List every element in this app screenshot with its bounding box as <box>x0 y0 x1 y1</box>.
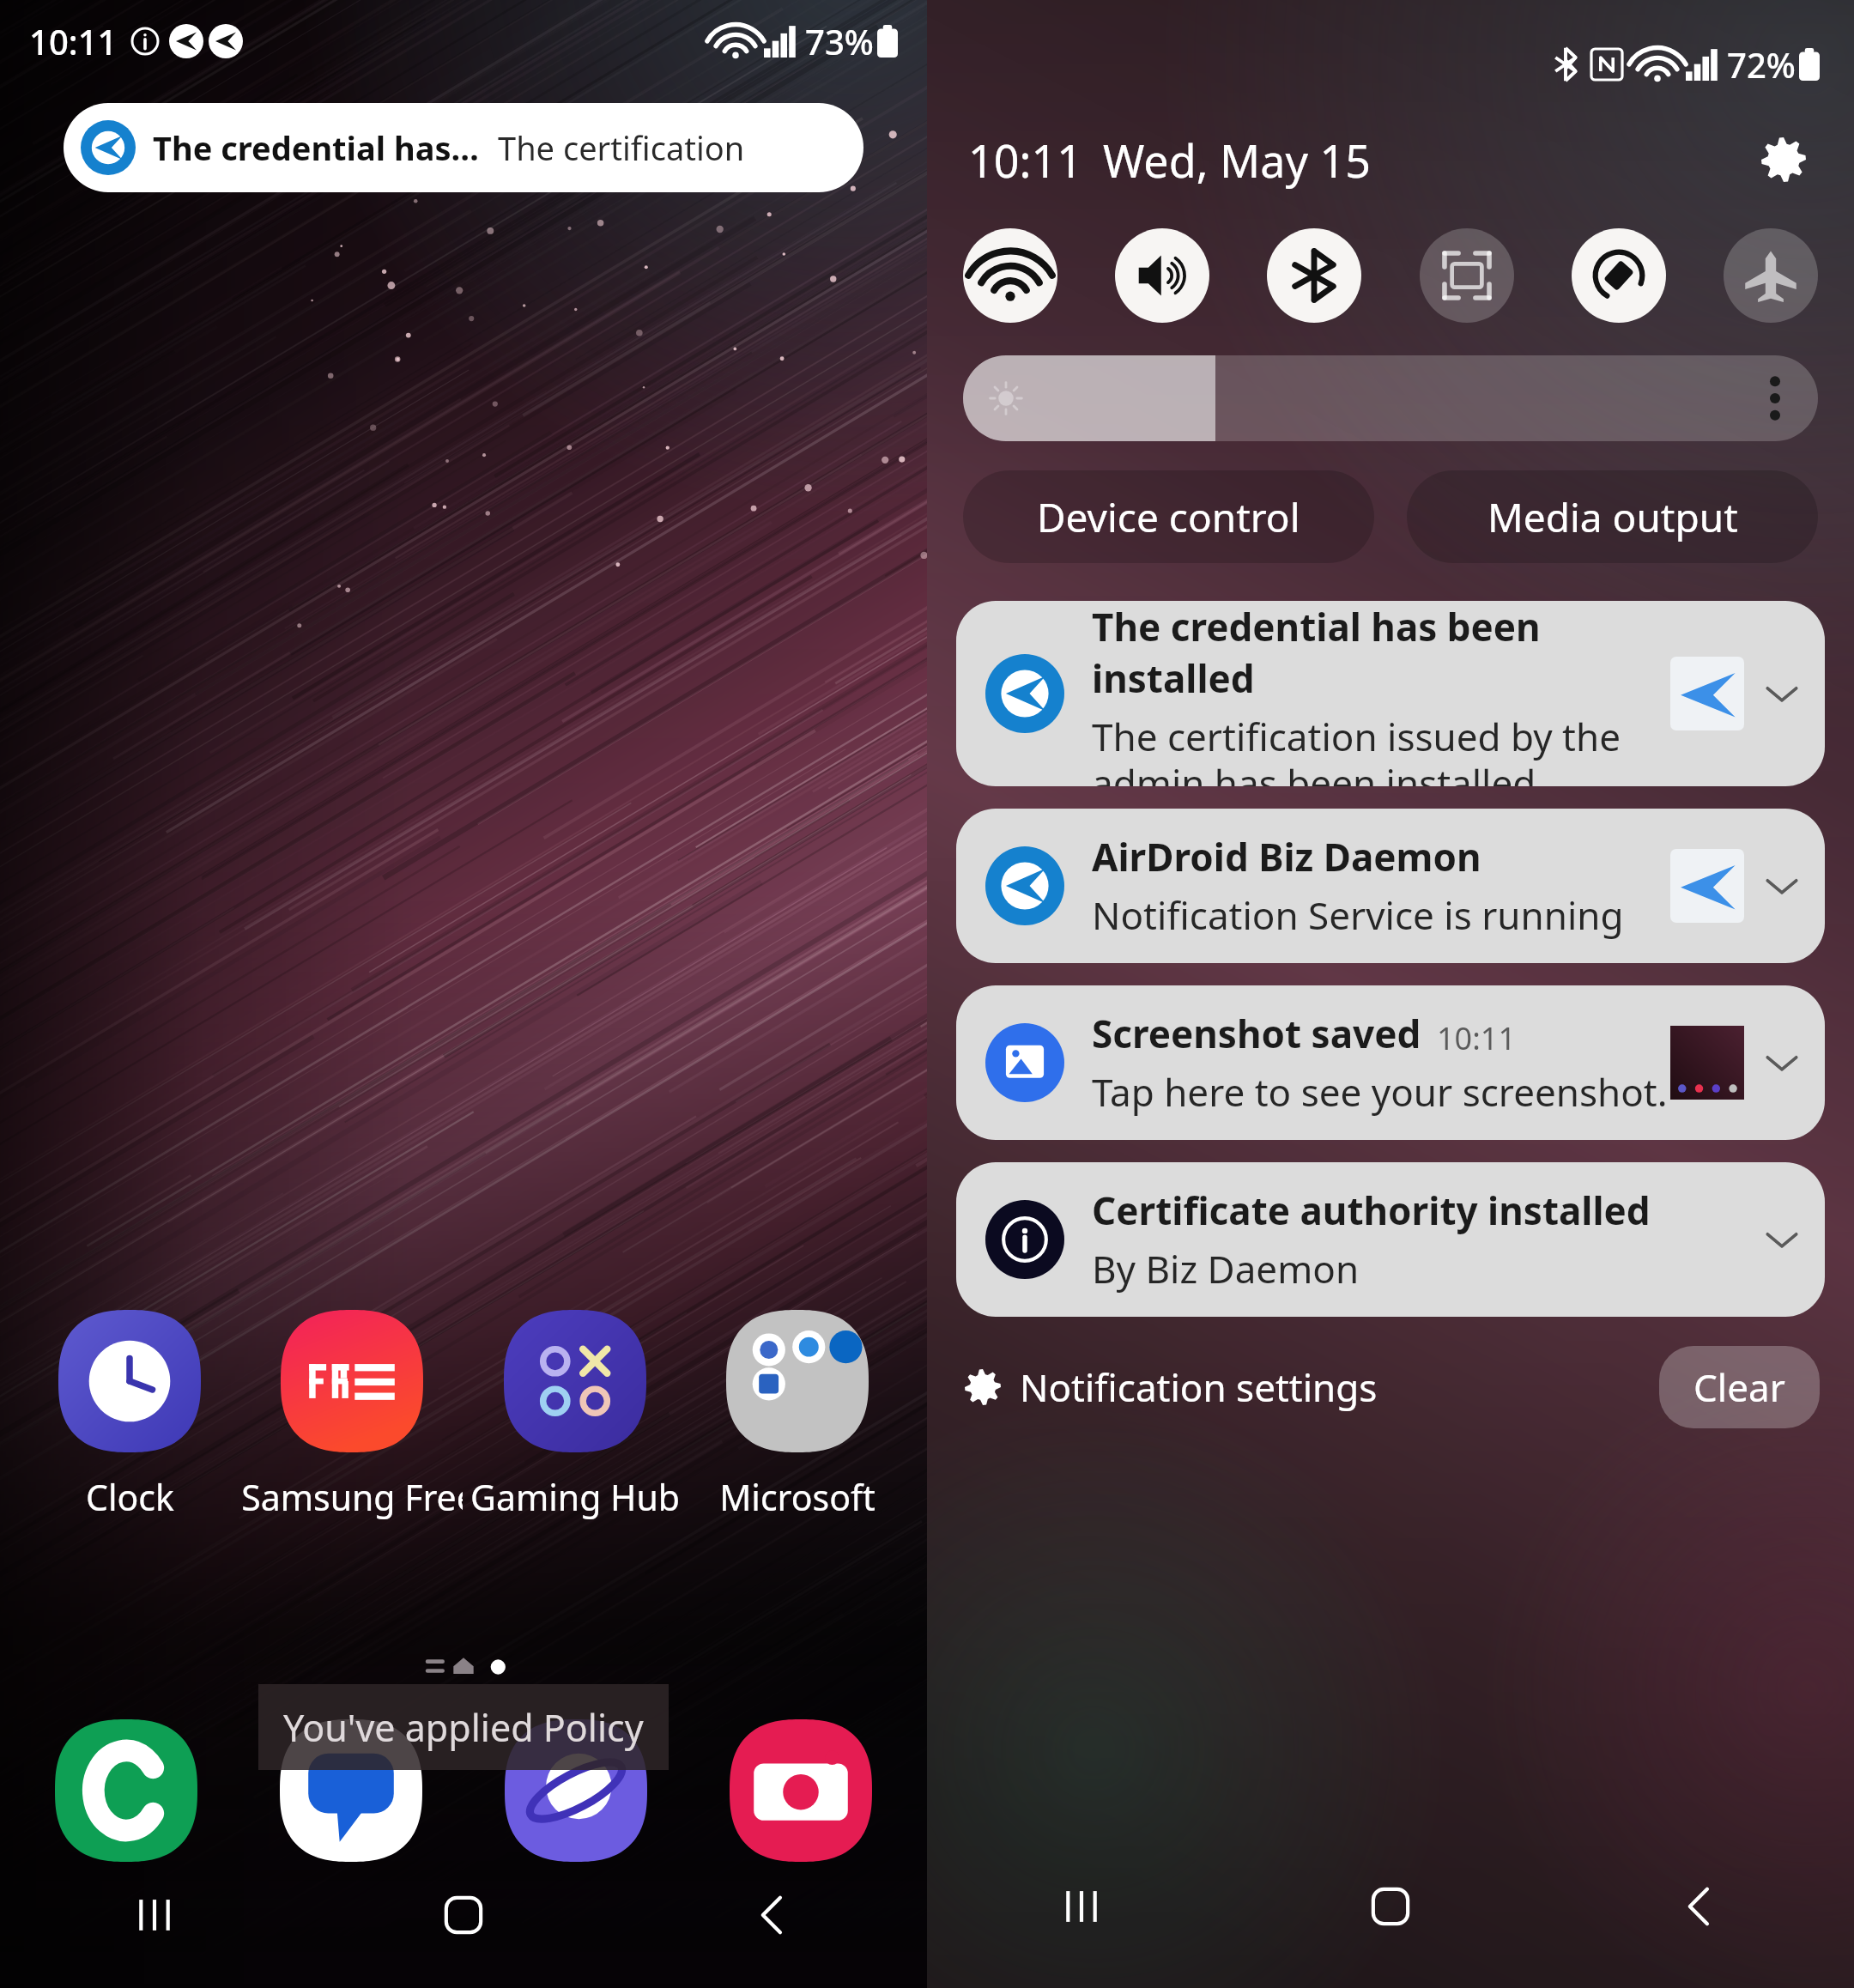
button[interactable]: Samsung Free <box>241 1310 463 1521</box>
button[interactable]: Device control <box>963 470 1374 563</box>
staticText: Clock <box>86 1473 174 1521</box>
staticText: Screenshot saved <box>1092 1008 1421 1059</box>
staticText: Gaming Hub <box>470 1473 680 1521</box>
button[interactable]: Back <box>1545 1859 1854 1954</box>
button[interactable]: Toggle <box>1115 228 1209 323</box>
button[interactable]: Toggle <box>1420 228 1514 323</box>
staticText: The certification issued by the admin ha… <box>1092 711 1621 786</box>
button[interactable]: The credential has… <box>64 103 863 192</box>
button[interactable]: Home <box>309 1868 618 1962</box>
button[interactable]: Toggle <box>1724 228 1818 323</box>
staticText: The certification issued… <box>498 125 846 170</box>
button[interactable]: Clock <box>19 1310 240 1521</box>
button[interactable]: Recents <box>0 1868 309 1962</box>
button[interactable]: Toggle <box>963 228 1057 323</box>
staticText: Tap here to see your screenshot. <box>1092 1066 1668 1118</box>
staticText: 10:11 <box>1437 1017 1517 1059</box>
staticText: 10:11 <box>29 18 118 64</box>
staticText: 72% <box>1727 41 1796 88</box>
staticText: Device control <box>1037 490 1300 544</box>
staticText: 10:11 <box>968 130 1082 191</box>
button[interactable]: App <box>19 1713 233 1868</box>
staticText: The credential has been installed <box>1092 601 1670 704</box>
button[interactable]: Home <box>1236 1859 1545 1954</box>
button[interactable]: App <box>469 1713 683 1868</box>
staticText: The credential has… <box>153 125 479 170</box>
staticText: Microsoft <box>719 1473 875 1521</box>
button[interactable]: Screenshot saved <box>956 985 1825 1140</box>
staticText: Certificate authority installed <box>1092 1185 1651 1236</box>
staticText: Media output <box>1487 490 1738 544</box>
button[interactable]: Gaming Hub <box>464 1310 686 1521</box>
button[interactable]: Toggle <box>1572 228 1666 323</box>
staticText: Samsung Free <box>241 1473 463 1521</box>
button[interactable]: Brightness <box>963 355 1818 441</box>
button[interactable]: Microsoft <box>687 1310 908 1521</box>
button[interactable]: AirDroid Biz Daemon <box>956 809 1825 963</box>
staticText: Clear <box>1693 1361 1785 1413</box>
button[interactable]: Recents <box>927 1859 1236 1954</box>
button[interactable]: Clear <box>1659 1346 1820 1428</box>
staticText: Wed, May 15 <box>1103 130 1371 191</box>
button[interactable]: App <box>244 1713 458 1868</box>
button[interactable]: App <box>694 1713 908 1868</box>
button[interactable]: Media output <box>1407 470 1818 563</box>
staticText: By Biz Daemon <box>1092 1243 1360 1294</box>
button[interactable]: The credential has been installed <box>956 601 1825 786</box>
button[interactable]: Back <box>618 1868 927 1962</box>
staticText: AirDroid Biz Daemon <box>1092 831 1481 882</box>
staticText: Notification settings <box>1020 1361 1378 1413</box>
staticText: 73% <box>805 18 874 64</box>
staticText: You've applied Policy <box>283 1702 644 1753</box>
button[interactable]: Notification settings <box>965 1361 1378 1413</box>
button[interactable]: Certificate authority installed <box>956 1162 1825 1317</box>
button[interactable]: Toggle <box>1267 228 1361 323</box>
staticText: Notification Service is running <box>1092 889 1624 941</box>
button[interactable]: Settings <box>1753 129 1815 191</box>
